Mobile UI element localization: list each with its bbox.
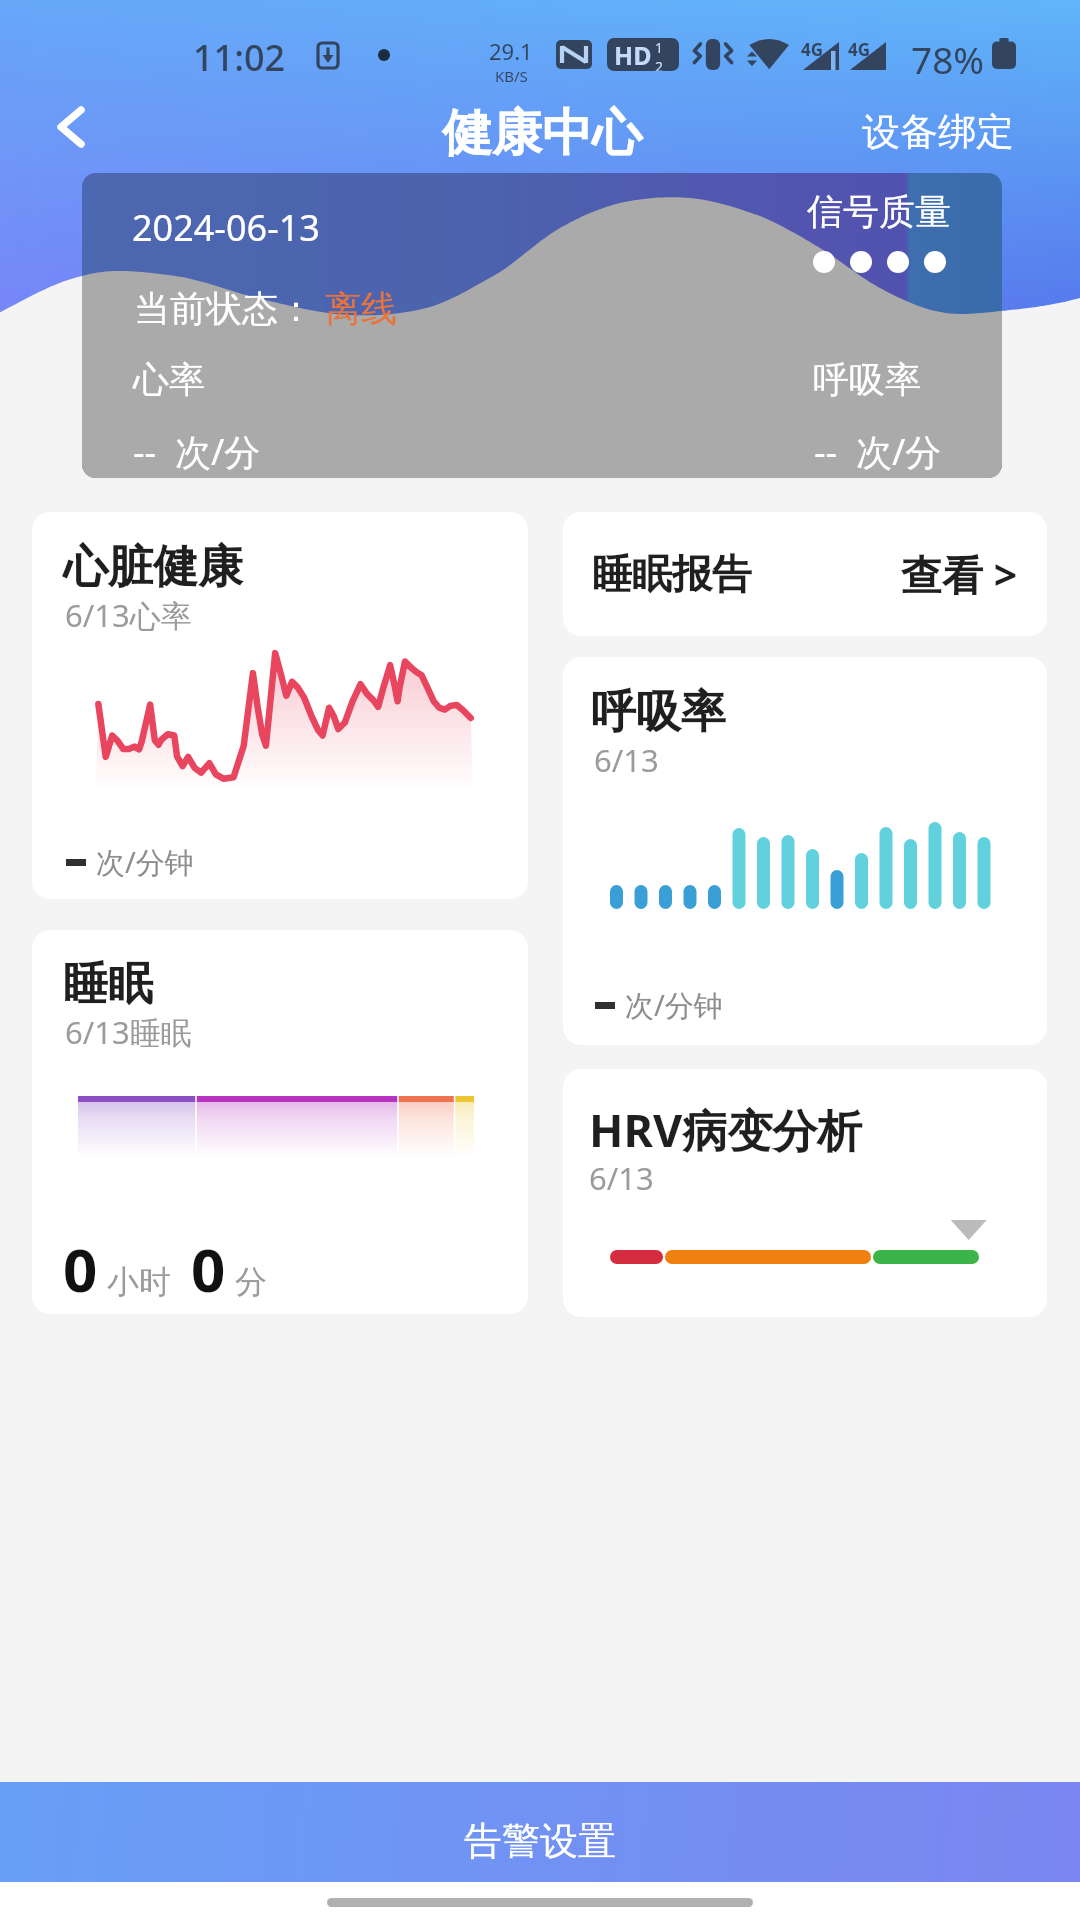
staticText: HD (614, 38, 652, 71)
staticText: 呼吸率 (591, 684, 726, 741)
staticText: 健康中心 (442, 102, 642, 165)
staticText: 11:02 (193, 33, 286, 82)
staticText: 心脏健康 (63, 539, 243, 596)
staticText: -- 次/分 (814, 427, 942, 476)
button[interactable]: 呼吸率 (563, 657, 1047, 1045)
staticText: 呼吸率 (813, 357, 921, 402)
staticText: HRV病变分析 (589, 1099, 863, 1160)
staticText: 2 (655, 57, 664, 71)
staticText: 设备绑定 (862, 108, 1014, 156)
staticText: 信号质量 (807, 189, 951, 234)
button[interactable]: 2024-06-13 (82, 173, 1002, 478)
staticText: 0 (63, 1228, 98, 1310)
button[interactable]: HRV病变分析 (563, 1069, 1047, 1317)
staticText: 6/13 (594, 739, 659, 781)
staticText: -- 次/分 (133, 427, 261, 476)
button[interactable]: 设备绑定 (842, 100, 1034, 164)
staticText: 告警设置 (464, 1817, 616, 1865)
staticText: 心率 (133, 357, 205, 402)
button[interactable]: 睡眠 (32, 930, 528, 1314)
staticText: 离线 (325, 286, 397, 331)
staticText: 6/13睡眠 (65, 1011, 192, 1053)
staticText: 29.1 (489, 36, 533, 66)
staticText: 78% (911, 34, 985, 84)
button[interactable]: Back (38, 94, 104, 160)
staticText: 1 (655, 38, 664, 57)
staticText: 当前状态： (134, 286, 314, 331)
staticText: 次/分钟 (96, 842, 194, 882)
staticText: 小时 (107, 1262, 171, 1302)
staticText: 分 (235, 1262, 267, 1302)
button[interactable]: 告警设置 (0, 1782, 1080, 1882)
button[interactable]: 睡眠报告 (563, 512, 1047, 636)
staticText: 睡眠报告 (592, 549, 752, 599)
staticText: 次/分钟 (625, 985, 723, 1025)
staticText: 2024-06-13 (132, 203, 320, 252)
staticText: KB/S (495, 66, 528, 86)
staticText: 4G (848, 38, 871, 61)
button[interactable]: 心脏健康 (32, 512, 528, 899)
staticText: 6/13心率 (65, 594, 192, 636)
staticText: 6/13 (589, 1157, 654, 1199)
staticText: 0 (191, 1228, 226, 1310)
staticText: 查看 > (901, 546, 1018, 602)
staticText: 4G (801, 38, 824, 61)
staticText: 睡眠 (63, 956, 153, 1013)
